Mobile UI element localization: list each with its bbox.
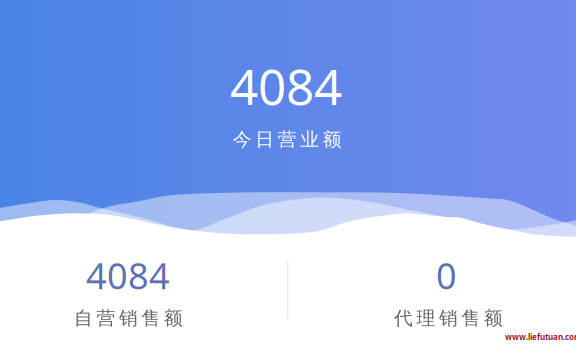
staticText: 今日营业额 [233,128,342,151]
staticText: 自营销售额 [74,307,183,330]
staticText: 代理销售额 [394,307,503,330]
staticText: 4084 [230,53,342,118]
button[interactable]: 0 [318,250,574,338]
staticText: 4084 [86,251,170,299]
button[interactable]: 4084 [0,250,256,338]
staticText: 0 [436,251,457,299]
staticText: www.liefutuan.com [505,331,576,342]
